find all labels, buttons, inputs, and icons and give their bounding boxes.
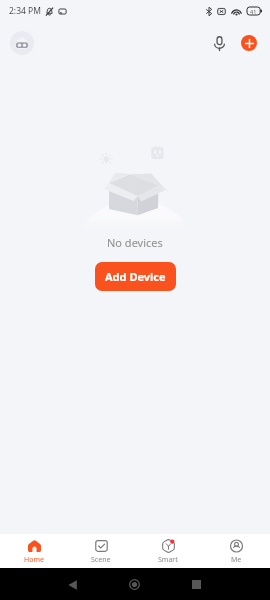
button[interactable]: Add device [241,35,257,51]
staticText: 2:34 PM [9,5,41,17]
button[interactable]: Profile [10,31,34,55]
staticText: Add Device [105,269,166,284]
staticText: No devices [107,235,163,250]
button[interactable]: Home [0,534,67,568]
staticText: Scene [91,555,111,565]
button[interactable]: Me [202,534,270,568]
button[interactable]: Scene [67,534,134,568]
button[interactable]: Recent apps [184,572,209,597]
staticText: Me [231,555,242,565]
button[interactable]: Add Device [95,262,176,291]
staticText: Home [24,555,44,565]
button[interactable]: Home [122,572,147,597]
staticText: 41 [250,8,257,15]
button[interactable]: Back [60,572,85,597]
button[interactable]: Voice search [208,32,230,54]
button[interactable]: Smart [134,534,202,568]
staticText: Smart [158,555,178,565]
